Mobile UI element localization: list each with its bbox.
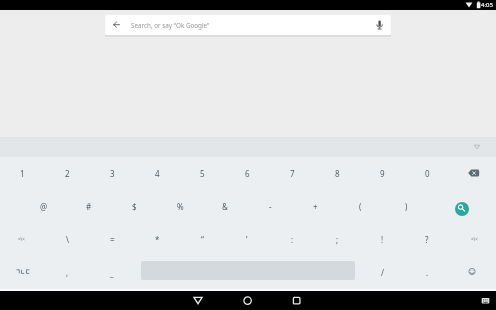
staticText: \	[66, 234, 69, 245]
button[interactable]: !	[366, 229, 398, 249]
button[interactable]: /	[366, 262, 398, 282]
button[interactable]: )	[390, 196, 422, 216]
button[interactable]: .	[411, 262, 443, 282]
button[interactable]: *	[141, 229, 173, 249]
staticText: )	[405, 201, 408, 212]
button[interactable]: +	[299, 196, 331, 216]
button[interactable]: &	[209, 196, 241, 216]
button[interactable]: @	[28, 196, 60, 216]
button[interactable]: (	[344, 196, 376, 216]
staticText: 7	[290, 168, 295, 179]
staticText: ?	[425, 234, 429, 245]
button[interactable]: ,	[51, 262, 83, 282]
staticText: =	[110, 234, 115, 245]
button[interactable]: $	[118, 196, 150, 216]
staticText: 1	[20, 168, 25, 179]
button[interactable]: :	[276, 229, 308, 249]
staticText: ,	[66, 267, 69, 278]
staticText: *	[155, 234, 160, 245]
button[interactable]: ?	[411, 229, 443, 249]
staticText: =\<	[471, 236, 478, 242]
button[interactable]: =\<	[458, 229, 490, 249]
staticText: #	[86, 201, 92, 212]
button[interactable]: 5	[186, 163, 218, 183]
button[interactable]: ’	[231, 229, 263, 249]
staticText: $	[132, 201, 137, 212]
staticText: =\<	[18, 236, 25, 242]
staticText: _	[110, 267, 114, 278]
staticText: (	[359, 201, 362, 212]
staticText: !	[381, 234, 384, 245]
button[interactable]: 1	[6, 163, 38, 183]
staticText: @	[40, 201, 48, 212]
staticText: 9	[380, 168, 385, 179]
staticText: 4:05	[481, 1, 493, 9]
staticText: -	[269, 201, 272, 212]
button[interactable]: _	[96, 262, 128, 282]
staticText: 6	[245, 168, 250, 179]
staticText: ’	[246, 234, 248, 245]
button[interactable]	[105, 15, 391, 35]
button[interactable]	[460, 164, 488, 182]
staticText: &	[222, 201, 228, 212]
button[interactable]: %	[164, 196, 196, 216]
button[interactable]: 3	[96, 163, 128, 183]
staticText: 3	[110, 168, 115, 179]
button[interactable]: =	[96, 229, 128, 249]
staticText: ;	[336, 234, 339, 245]
button[interactable]: 0	[411, 163, 443, 183]
staticText: /	[381, 267, 384, 278]
button[interactable]: #	[73, 196, 105, 216]
button[interactable]: “	[186, 229, 218, 249]
button[interactable]: 7	[276, 163, 308, 183]
staticText: :	[291, 234, 294, 245]
staticText: .	[426, 267, 429, 278]
button[interactable]	[455, 202, 469, 216]
staticText: 8	[335, 168, 340, 179]
staticText: 4	[155, 168, 160, 179]
staticText: %	[177, 201, 184, 212]
button[interactable]: =\<	[5, 229, 37, 249]
button[interactable]: -	[254, 196, 286, 216]
button[interactable]: \	[51, 229, 83, 249]
staticText: Search, or say “Ok Google”	[131, 21, 210, 30]
staticText: 5	[200, 168, 205, 179]
staticText: “	[201, 234, 204, 245]
staticText: 0	[425, 168, 430, 179]
button[interactable]: 6	[231, 163, 263, 183]
button[interactable]: 2	[51, 163, 83, 183]
button[interactable]: 4	[141, 163, 173, 183]
staticText: +	[313, 201, 318, 212]
button[interactable]: 9	[366, 163, 398, 183]
button[interactable]: 8	[321, 163, 353, 183]
button[interactable]: ;	[321, 229, 353, 249]
staticText: 2	[65, 168, 70, 179]
